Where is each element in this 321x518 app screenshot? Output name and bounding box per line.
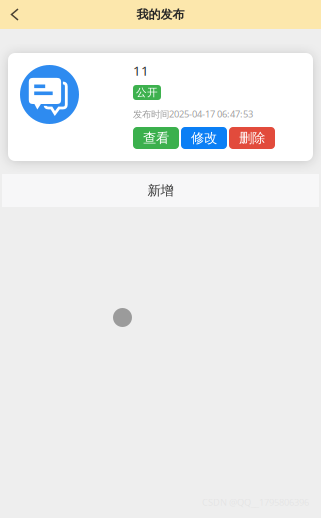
staticText: 我的发布 xyxy=(136,7,184,22)
staticText: 修改 xyxy=(191,130,217,146)
staticText: 发布时间2025-04-17 06:47:53 xyxy=(133,108,253,120)
staticText: 查看 xyxy=(143,130,169,146)
button[interactable]: 查看 xyxy=(133,127,179,149)
button[interactable]: 删除 xyxy=(229,127,275,149)
staticText: 公开 xyxy=(136,86,158,99)
staticText: 删除 xyxy=(239,130,265,146)
button[interactable]: Back xyxy=(0,0,30,29)
button[interactable]: 11 xyxy=(8,53,313,161)
button[interactable]: 修改 xyxy=(181,127,227,149)
button[interactable]: 新增 xyxy=(2,174,319,207)
staticText: 新增 xyxy=(147,182,173,199)
staticText: 11 xyxy=(133,62,149,79)
